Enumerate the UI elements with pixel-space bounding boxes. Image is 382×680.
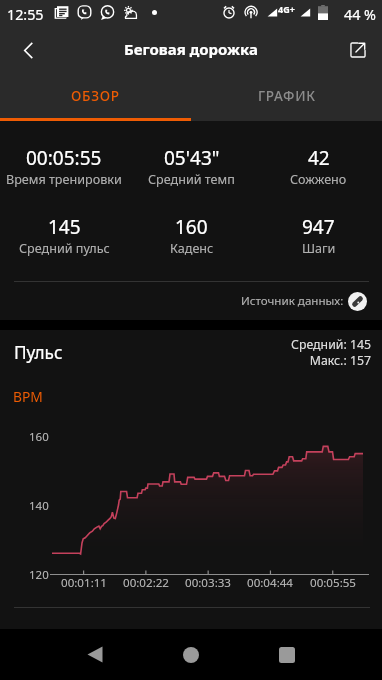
staticText: Средний темп bbox=[148, 171, 235, 188]
staticText: 12:55 bbox=[7, 5, 44, 24]
button[interactable]: 05'43" bbox=[128, 145, 255, 171]
button[interactable]: 145 bbox=[0, 214, 128, 240]
staticText: ГРАФИК bbox=[258, 87, 316, 105]
button[interactable]: 160 bbox=[128, 214, 255, 240]
staticText: 00:04:44 bbox=[240, 575, 300, 591]
staticText: Средний пульс bbox=[19, 240, 110, 257]
staticText: Беговая дорожка bbox=[124, 39, 258, 59]
staticText: 160 bbox=[175, 214, 208, 240]
button[interactable]: ОБЗОР bbox=[0, 74, 191, 121]
staticText: 00:05:55 bbox=[26, 145, 102, 171]
staticText: 42 bbox=[308, 145, 330, 171]
staticText: 120 bbox=[29, 567, 49, 583]
staticText: 44 % bbox=[344, 5, 376, 24]
staticText: 00:01:11 bbox=[54, 575, 114, 591]
button[interactable]: Back bbox=[70, 632, 119, 677]
button[interactable]: Open in new bbox=[337, 29, 379, 71]
staticText: Пульс bbox=[14, 341, 63, 364]
staticText: 145 bbox=[48, 214, 81, 240]
button[interactable]: Источник данных: bbox=[0, 282, 367, 320]
staticText: Сожжено bbox=[290, 171, 347, 188]
button[interactable]: Recent apps bbox=[262, 632, 311, 677]
staticText: 140 bbox=[29, 498, 49, 514]
button[interactable]: ГРАФИК bbox=[191, 74, 382, 121]
button[interactable]: Back bbox=[7, 29, 49, 71]
button[interactable]: 947 bbox=[255, 214, 382, 240]
staticText: Средний: 145 bbox=[0, 336, 371, 353]
staticText: 00:02:22 bbox=[116, 575, 176, 591]
staticText: 4G+ bbox=[278, 3, 295, 15]
staticText: ОБЗОР bbox=[71, 87, 120, 105]
staticText: Источник данных: bbox=[241, 293, 344, 309]
staticText: Каденс bbox=[170, 240, 214, 257]
staticText: BPM bbox=[13, 387, 43, 406]
staticText: 160 bbox=[29, 429, 49, 445]
button[interactable]: 42 bbox=[255, 145, 382, 171]
button[interactable]: Home bbox=[166, 632, 215, 677]
staticText: 947 bbox=[302, 214, 335, 240]
staticText: Шаги bbox=[302, 240, 336, 257]
staticText: 00:05:55 bbox=[303, 575, 363, 591]
staticText: 05'43" bbox=[164, 145, 220, 171]
button[interactable]: 00:05:55 bbox=[0, 145, 128, 171]
staticText: 00:03:33 bbox=[178, 575, 238, 591]
staticText: Макс.: 157 bbox=[0, 352, 371, 369]
staticText: Время тренировки bbox=[6, 171, 122, 188]
